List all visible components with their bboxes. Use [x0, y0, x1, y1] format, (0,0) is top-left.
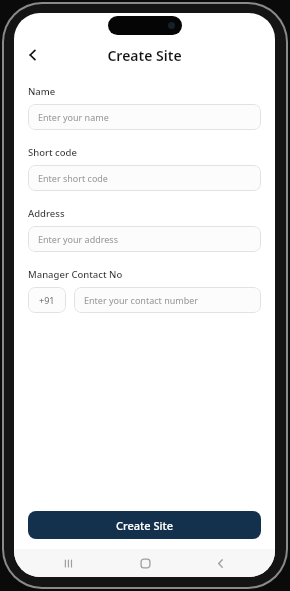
button[interactable]: Recent apps — [49, 549, 89, 577]
button[interactable]: Enter short code — [28, 165, 261, 191]
staticText: Create Site — [107, 46, 182, 65]
button[interactable]: Enter your contact number — [74, 287, 261, 313]
staticText: +91 — [39, 294, 55, 306]
button[interactable]: Enter your name — [28, 104, 261, 130]
staticText: Manager Contact No — [28, 268, 123, 281]
staticText: Enter your name — [38, 111, 109, 123]
staticText: Enter your address — [38, 233, 118, 245]
button[interactable]: Enter your address — [28, 226, 261, 252]
staticText: Enter your contact number — [84, 294, 199, 306]
staticText: Name — [28, 85, 56, 98]
staticText: Short code — [28, 146, 77, 159]
staticText: Address — [28, 207, 65, 220]
button[interactable]: Home — [125, 549, 165, 577]
button[interactable]: Create Site — [28, 511, 261, 539]
staticText: Enter short code — [38, 172, 108, 184]
staticText: Create Site — [116, 518, 173, 533]
button[interactable]: +91 — [28, 287, 66, 313]
button[interactable]: Back — [20, 42, 46, 68]
button[interactable]: Back — [200, 549, 240, 577]
